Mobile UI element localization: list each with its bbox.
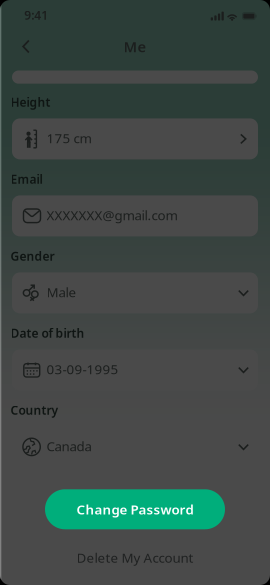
staticText: Height	[11, 94, 51, 110]
staticText: Me	[123, 37, 146, 56]
staticText: Male	[47, 283, 77, 301]
button[interactable]: XXXXXXX@gmail.com	[0, 0, 246, 41]
staticText: XXXXXXX@gmail.com	[47, 206, 178, 224]
staticText: Email	[11, 171, 43, 187]
staticText: 9:41	[24, 7, 48, 23]
staticText: 175 cm	[47, 129, 92, 147]
staticText: Canada	[47, 437, 92, 455]
button[interactable]: Male	[0, 0, 246, 41]
button[interactable]: Canada	[0, 0, 246, 41]
staticText: Delete My Account	[76, 549, 193, 566]
staticText: 03-09-1995	[47, 360, 119, 378]
button[interactable]: Back	[0, 0, 26, 26]
staticText: Date of birth	[11, 325, 85, 341]
button[interactable]: 175 cm	[0, 0, 246, 41]
button[interactable]: Delete My Account	[0, 0, 270, 20]
staticText: Gender	[11, 248, 55, 264]
button[interactable]: 03-09-1995	[0, 0, 246, 41]
staticText: Country	[11, 402, 59, 418]
staticText: Change Password	[76, 500, 193, 518]
button[interactable]: Change Password	[0, 0, 180, 40]
